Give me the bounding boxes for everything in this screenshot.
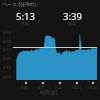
staticText: 最高 xyxy=(68,21,76,26)
staticText: 5:13 xyxy=(16,10,35,23)
staticText: 18:44 xyxy=(88,85,97,90)
staticText: 5:30 xyxy=(3,65,11,70)
staticText: 3:30 xyxy=(3,30,11,35)
staticText: 9:22 xyxy=(55,85,62,90)
staticText: 0:00 xyxy=(21,85,28,90)
button[interactable]: ペース (分/km) xyxy=(2,1,36,8)
staticText: 5:00 xyxy=(3,56,11,61)
staticText: ペース (分/km) xyxy=(2,1,36,8)
staticText: 平均 xyxy=(21,21,29,26)
staticText: 時間 (分) xyxy=(40,89,58,95)
staticText: 14:03 xyxy=(72,85,81,90)
staticText: 3:39 xyxy=(63,10,82,23)
staticText: 4:00 xyxy=(3,39,11,44)
staticText: 4:41 xyxy=(38,85,45,90)
staticText: 6:00 xyxy=(3,74,11,79)
staticText: 4:30 xyxy=(3,47,11,52)
